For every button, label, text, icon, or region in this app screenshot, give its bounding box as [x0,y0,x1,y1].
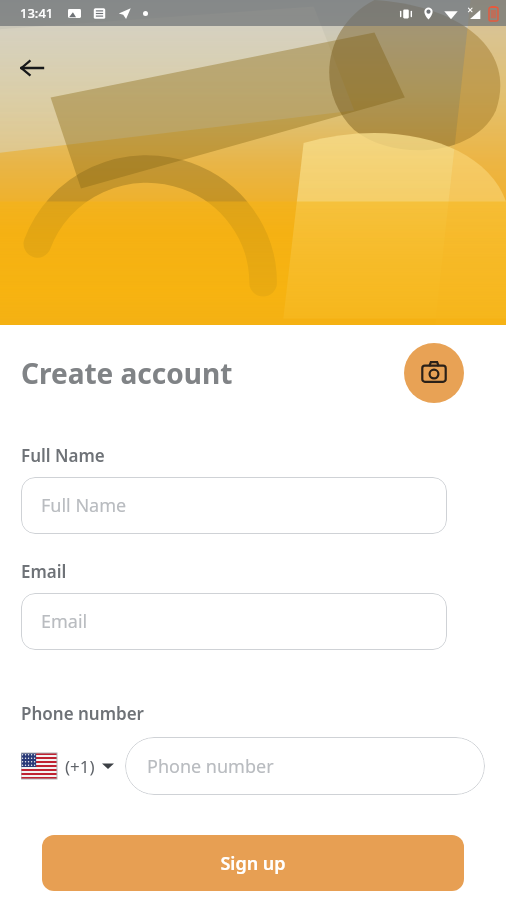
button[interactable]: Sign up [42,835,464,891]
button[interactable]: (+1) [21,747,114,785]
staticText: Email [21,560,67,583]
staticText: Email [41,609,88,634]
staticText: Full Name [41,493,127,518]
button[interactable]: Full Name [21,477,447,534]
staticText: Phone number [147,754,274,779]
button[interactable]: Email [21,593,447,650]
button[interactable]: Phone number [125,737,485,795]
button[interactable]: Add profile photo [404,343,464,403]
staticText: Sign up [220,851,286,876]
staticText: Phone number [21,702,144,725]
button[interactable]: Back [10,46,54,90]
staticText: (+1) [65,755,95,778]
staticText: 13:41 [20,4,54,22]
staticText: Create account [21,354,233,392]
staticText: Full Name [21,444,105,467]
